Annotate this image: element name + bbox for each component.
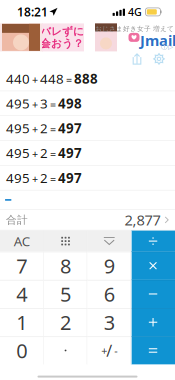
staticText: 4 xyxy=(16,281,27,307)
staticText: 8 xyxy=(60,252,71,279)
staticText: 2,877 xyxy=(125,210,161,230)
button[interactable]: All clear xyxy=(0,231,44,252)
staticText: 440 + 448 = 888 xyxy=(6,70,98,87)
button[interactable]: Divide xyxy=(131,231,175,252)
staticText: 3 xyxy=(104,309,115,335)
staticText: ⓘ▷ xyxy=(161,43,173,51)
staticText: 495 + 3 = 498 xyxy=(6,94,82,112)
staticText: 5 xyxy=(60,281,71,307)
staticText: 会おう？ xyxy=(40,37,84,50)
staticText: Jmail xyxy=(140,31,175,50)
button[interactable]: 495 + 3 = 498 xyxy=(0,91,175,116)
staticText: - xyxy=(114,343,117,357)
staticText: + xyxy=(101,343,107,358)
button[interactable]: Add xyxy=(131,308,175,336)
button[interactable]: バレずに xyxy=(0,23,175,51)
button[interactable]: 9 xyxy=(87,252,131,280)
button[interactable]: 0 xyxy=(0,336,44,365)
button[interactable]: Keypad xyxy=(44,231,87,252)
button[interactable]: Plus minus xyxy=(87,336,131,365)
staticText: / xyxy=(106,340,112,361)
staticText: 18:21 xyxy=(17,4,48,20)
button[interactable]: 495 + 2 = 497 xyxy=(0,116,175,141)
staticText: おじさま好き女子 増えてます xyxy=(95,25,175,33)
staticText: 4G xyxy=(128,5,142,19)
button[interactable]: 4 xyxy=(0,280,44,308)
staticText: 495 + 2 = 497 xyxy=(6,144,82,162)
button[interactable] xyxy=(44,336,87,365)
staticText: 2 xyxy=(60,309,71,335)
staticText: 6 xyxy=(104,281,115,307)
button[interactable]: 440 + 448 = 888 xyxy=(0,66,175,91)
button[interactable]: 5 xyxy=(44,280,87,308)
staticText: 7 xyxy=(16,252,27,279)
staticText: 合計 xyxy=(6,213,28,226)
button[interactable]: Hide keyboard xyxy=(87,231,131,252)
button[interactable]: Settings xyxy=(148,51,170,66)
button[interactable]: 合計 xyxy=(0,210,175,231)
staticText: AC xyxy=(14,232,30,250)
button[interactable]: 495 + 2 = 497 xyxy=(0,166,175,190)
button[interactable]: Multiply xyxy=(131,252,175,280)
button[interactable]: 7 xyxy=(0,252,44,280)
staticText: 1 xyxy=(16,309,27,335)
button[interactable]: 2 xyxy=(44,308,87,336)
staticText: 9 xyxy=(104,252,115,279)
staticText: 495 + 2 = 497 xyxy=(6,169,82,187)
button[interactable]: Subtract xyxy=(131,280,175,308)
button[interactable]: 495 + 2 = 497 xyxy=(0,141,175,166)
button[interactable]: 8 xyxy=(44,252,87,280)
staticText: 495 + 2 = 497 xyxy=(6,119,82,137)
button[interactable]: 6 xyxy=(87,280,131,308)
button[interactable]: 1 xyxy=(0,308,44,336)
staticText: バレずに xyxy=(40,25,84,38)
button[interactable]: Equals xyxy=(131,336,175,365)
button[interactable]: 3 xyxy=(87,308,131,336)
button[interactable]: Share xyxy=(126,51,148,66)
staticText: 0 xyxy=(16,337,27,364)
